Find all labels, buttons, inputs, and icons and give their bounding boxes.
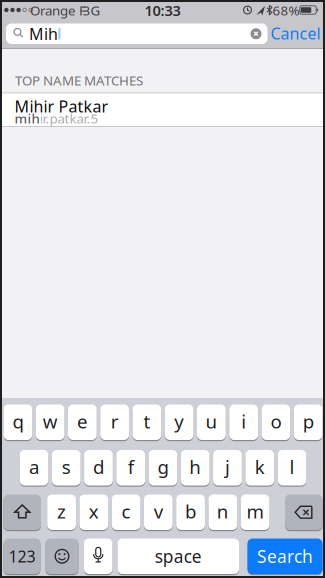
staticText: Cancel [270,23,320,44]
staticText: b [185,499,196,524]
staticText: l [289,454,294,479]
staticText: Search [257,545,313,568]
staticText: q [12,409,23,434]
button[interactable]: q [3,403,32,441]
staticText: t [143,409,150,434]
staticText: x [89,499,99,524]
button[interactable]: s [52,449,81,486]
button[interactable] [250,28,261,39]
staticText: h [189,454,201,479]
staticText: w [43,409,58,434]
staticText: m [247,499,264,524]
staticText: n [217,499,229,524]
staticText: space [155,545,202,568]
button[interactable]: a [20,449,48,486]
staticText: 68% [272,1,299,19]
staticText: mih [14,109,39,127]
button[interactable]: z [47,493,76,531]
button[interactable]: Mihir Patkar [0,93,325,126]
button[interactable]: v [144,493,173,531]
staticText: o [270,409,281,434]
button[interactable]: k [245,449,274,486]
staticText: 123 [8,546,35,567]
button[interactable]: p [294,403,323,441]
button[interactable]: g [149,449,177,486]
staticText: s [62,454,71,479]
button[interactable]: w [36,403,65,441]
button[interactable]: u [197,403,226,441]
staticText: Mihir Patkar [14,96,108,117]
button[interactable]: r [100,403,129,441]
button[interactable]: c [112,493,140,531]
button[interactable]: l [278,449,306,486]
button[interactable]: j [213,449,242,486]
staticText: u [205,409,217,434]
button[interactable] [45,537,78,575]
button[interactable]: n [208,493,237,531]
staticText: Orange F [30,1,86,19]
button[interactable]: b [176,493,205,531]
staticText: TOP NAME MATCHES [15,71,143,89]
staticText: p [303,409,314,434]
button[interactable]: d [84,449,113,486]
staticText: 10:33 [144,1,180,20]
button[interactable] [285,493,322,531]
staticText: ir.patkar.5 [39,109,98,127]
button[interactable]: h [181,449,210,486]
button[interactable] [84,537,112,575]
staticText: 3G [82,1,100,19]
staticText: e [77,409,88,434]
staticText: r [111,409,119,434]
staticText: k [255,454,265,479]
staticText: z [57,499,66,524]
staticText: a [29,454,39,479]
button[interactable]: Search [247,537,322,575]
staticText: v [154,499,163,524]
button[interactable]: x [79,493,108,531]
staticText: y [174,409,184,434]
staticText: j [225,454,230,479]
staticText: Mih [29,23,58,44]
staticText: f [128,454,134,479]
staticText: i [241,409,246,434]
button[interactable]: Cancel [270,23,320,44]
button[interactable]: m [241,493,269,531]
staticText: d [93,454,104,479]
button[interactable]: t [132,403,161,441]
button[interactable]: f [116,449,145,486]
button[interactable] [3,493,41,531]
staticText: g [157,454,168,479]
button[interactable]: Mih [6,23,267,44]
button[interactable]: i [229,403,258,441]
button[interactable]: 123 [3,537,40,575]
button[interactable]: o [261,403,290,441]
button[interactable]: e [68,403,97,441]
button[interactable]: space [117,537,239,575]
button[interactable]: y [165,403,194,441]
staticText: c [122,499,131,524]
